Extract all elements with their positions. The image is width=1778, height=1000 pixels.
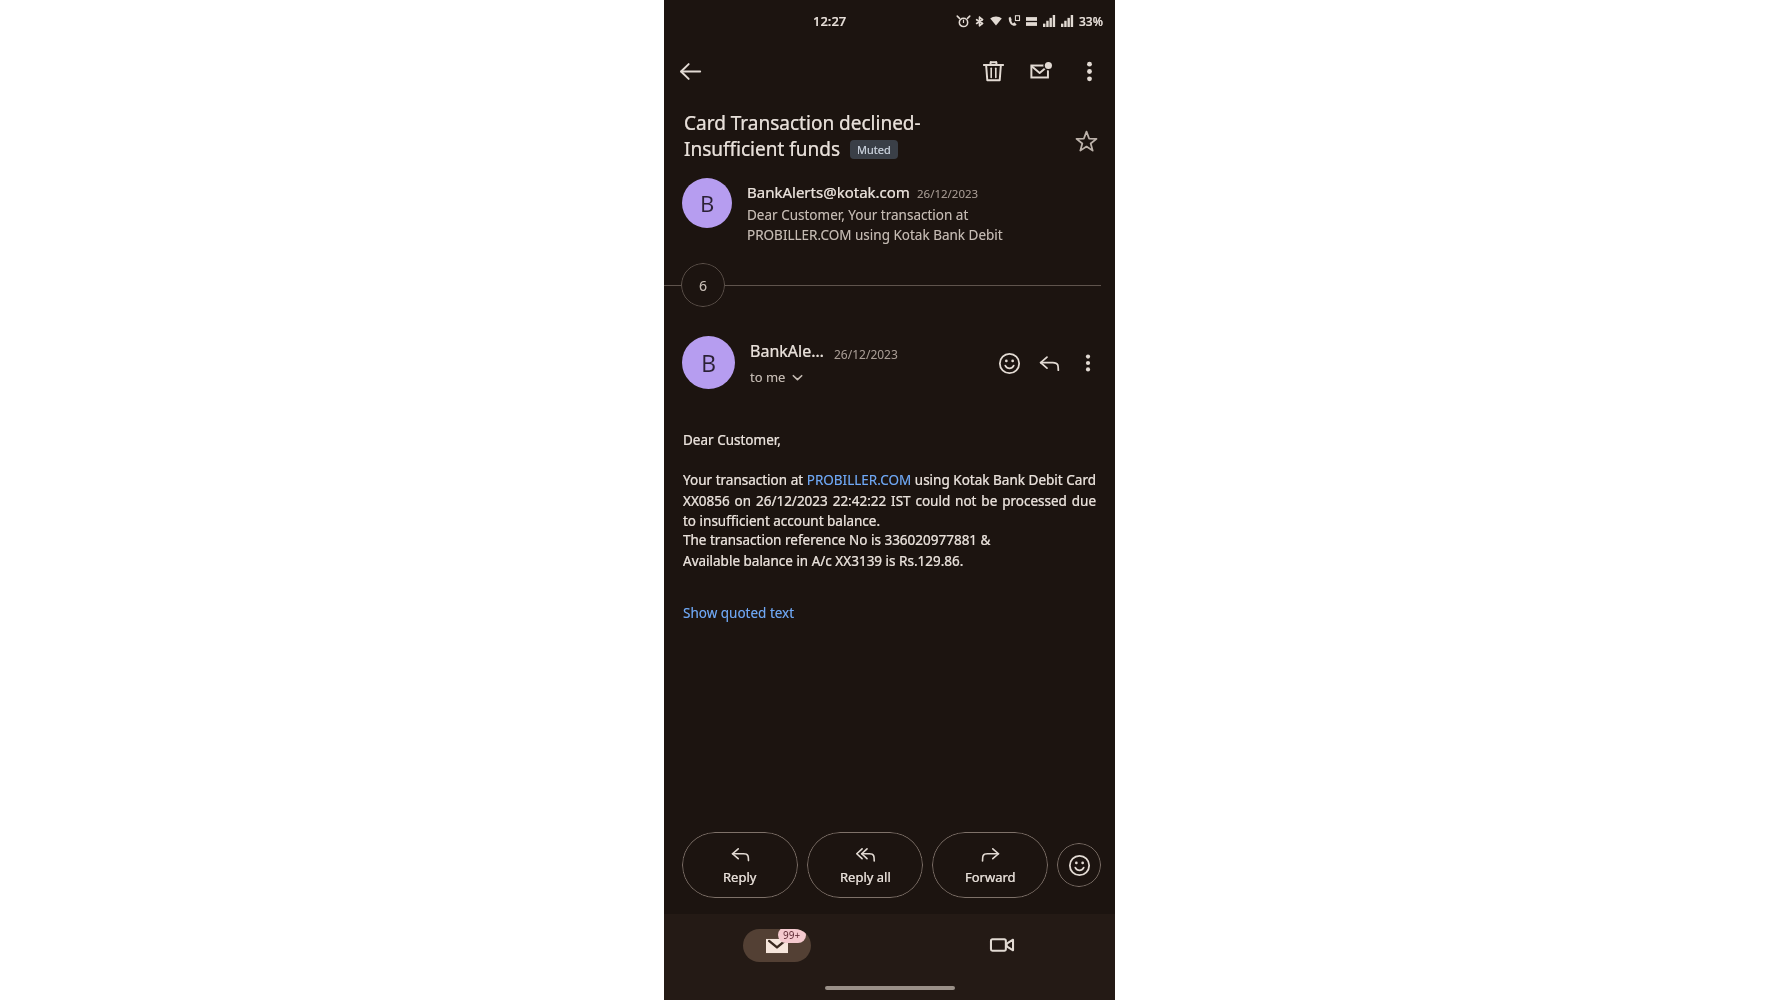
staticText: The transaction reference No is 33602097… xyxy=(683,531,991,570)
button[interactable]: Mark unread xyxy=(1019,49,1063,93)
button[interactable]: 6 xyxy=(681,263,725,307)
staticText: 26/12/2023 xyxy=(917,186,979,202)
staticText: 6 xyxy=(699,276,708,295)
button[interactable]: Delete xyxy=(971,49,1015,93)
button[interactable]: Show quoted text xyxy=(683,604,795,622)
staticText: BankAle… xyxy=(750,340,824,362)
button[interactable]: Add reaction xyxy=(1057,843,1101,887)
staticText: Reply all xyxy=(840,868,891,886)
button[interactable]: Forward xyxy=(932,832,1048,898)
staticText: Your transaction at PROBILLER.COM using … xyxy=(683,471,1096,530)
staticText: Show quoted text xyxy=(683,604,795,622)
button[interactable]: Reply all xyxy=(807,832,923,898)
staticText: Card Transaction declined- xyxy=(684,110,921,136)
button[interactable]: More options xyxy=(1067,49,1111,93)
button[interactable]: More options xyxy=(1069,344,1107,382)
staticText: Reply xyxy=(723,868,757,886)
button[interactable]: Star xyxy=(1065,120,1107,162)
button[interactable]: Muted xyxy=(857,142,891,157)
staticText: Dear Customer, Your transaction at PROBI… xyxy=(747,206,1003,244)
button[interactable]: Reply xyxy=(682,832,798,898)
staticText: Dear Customer, xyxy=(683,431,781,449)
staticText: B xyxy=(700,188,715,218)
staticText: BankAlerts@kotak.com xyxy=(747,182,910,202)
staticText: 12:27 xyxy=(813,12,847,30)
staticText: Insufficient funds xyxy=(684,136,841,162)
staticText: 33% xyxy=(1079,13,1103,29)
button[interactable]: Mail xyxy=(743,929,811,962)
button[interactable]: B xyxy=(664,174,1115,248)
button[interactable]: to me xyxy=(750,368,803,386)
button[interactable]: Add reaction xyxy=(989,343,1029,383)
staticText: to me xyxy=(750,368,786,386)
button[interactable]: Back xyxy=(668,49,712,93)
staticText: B xyxy=(701,347,717,379)
staticText: Muted xyxy=(857,142,891,157)
staticText: Forward xyxy=(965,868,1016,886)
staticText: 99+ xyxy=(783,929,801,942)
button[interactable]: Reply xyxy=(1029,343,1069,383)
button[interactable]: Meet xyxy=(978,921,1026,969)
staticText: 26/12/2023 xyxy=(834,346,898,362)
